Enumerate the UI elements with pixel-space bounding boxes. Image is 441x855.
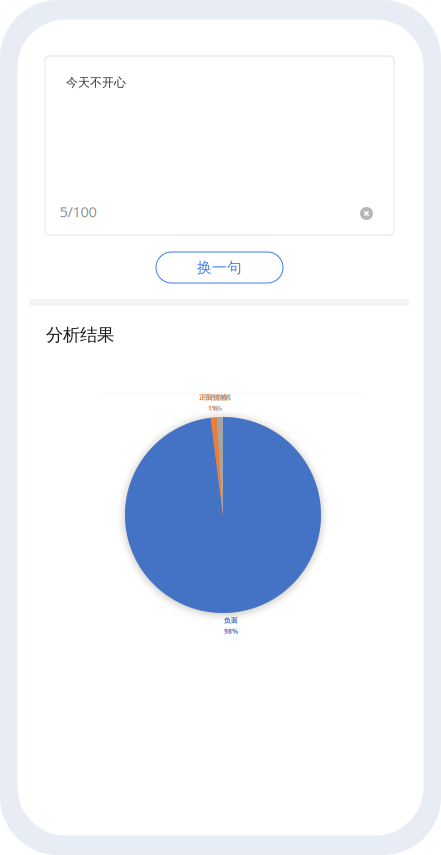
staticText: 分析结果 (46, 324, 114, 346)
staticText: 正面情感 (199, 393, 227, 402)
staticText: 1% (208, 404, 218, 413)
button[interactable]: 换一句 (156, 252, 283, 283)
staticText: 今天不开心 (66, 75, 126, 90)
staticText: 负面 (224, 616, 238, 625)
staticText: 5/100 (59, 202, 96, 221)
staticText: 1% (212, 404, 222, 413)
staticText: 98% (224, 627, 238, 636)
staticText: 中性情感 (203, 393, 231, 402)
staticText: 换一句 (197, 258, 242, 276)
button[interactable]: Clear text (360, 207, 373, 220)
